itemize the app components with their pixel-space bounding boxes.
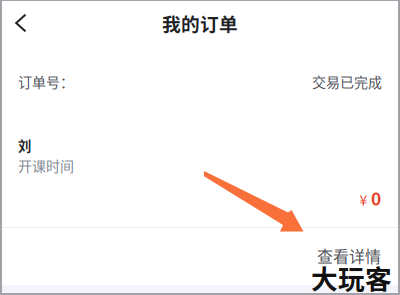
staticText: 大玩客 — [311, 258, 392, 295]
staticText: 0 — [371, 185, 381, 211]
staticText: 交易已完成 — [312, 71, 382, 92]
staticText: 刘 — [18, 136, 31, 155]
staticText: 开课时间 — [18, 155, 74, 176]
staticText: 订单号： — [18, 71, 74, 92]
staticText: 我的订单 — [162, 9, 238, 36]
staticText: 查看详情 — [317, 244, 381, 267]
staticText: ¥ — [359, 189, 367, 210]
button[interactable]: Back — [0, 0, 54, 46]
button[interactable]: 查看详情 — [303, 239, 400, 272]
